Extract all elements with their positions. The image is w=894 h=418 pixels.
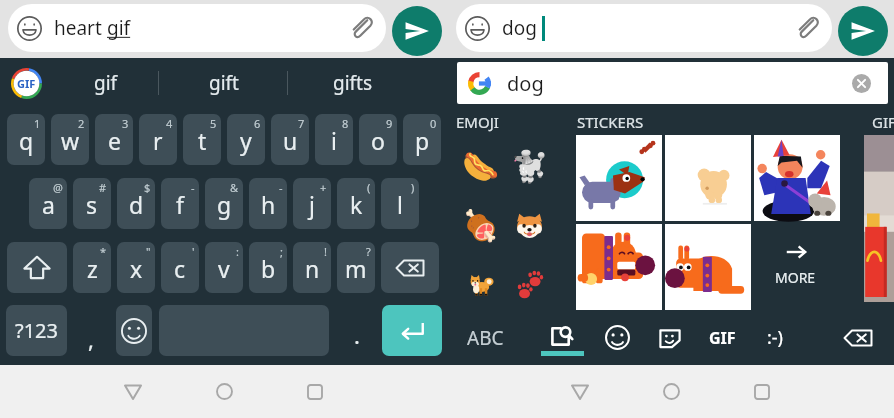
- button[interactable]: Home: [648, 365, 694, 418]
- staticText: MORE: [775, 268, 816, 287]
- button[interactable]: f: [161, 178, 199, 229]
- button[interactable]: GIF: [695, 310, 749, 365]
- button[interactable]: dog: [457, 62, 888, 104]
- button[interactable]: Emoji: [456, 255, 505, 314]
- button[interactable]: d: [117, 178, 155, 229]
- button[interactable]: GIF preview: [864, 135, 894, 302]
- button[interactable]: m: [337, 242, 375, 293]
- button[interactable]: p: [403, 114, 441, 165]
- button[interactable]: Home: [201, 365, 247, 418]
- button[interactable]: gifts: [288, 58, 417, 108]
- staticText: u: [283, 125, 298, 156]
- button[interactable]: w: [51, 114, 89, 165]
- button[interactable]: t: [183, 114, 221, 165]
- button[interactable]: gif: [53, 58, 159, 108]
- button[interactable]: Emoji: [505, 137, 554, 196]
- button[interactable]: n: [293, 242, 331, 293]
- staticText: 8: [342, 116, 349, 131]
- button[interactable]: Sticker: [576, 224, 662, 310]
- button[interactable]: Shift: [7, 242, 67, 293]
- button[interactable]: Backspace: [831, 310, 885, 365]
- staticText: e: [108, 125, 121, 156]
- staticText: ?123: [15, 317, 58, 344]
- button[interactable]: e: [95, 114, 133, 165]
- staticText: w: [61, 125, 80, 156]
- staticText: heart: [54, 15, 107, 41]
- button[interactable]: dog: [456, 4, 832, 52]
- staticText: k: [350, 189, 363, 220]
- button[interactable]: Send: [392, 6, 442, 56]
- staticText: t: [198, 125, 207, 156]
- button[interactable]: Enter: [382, 305, 442, 356]
- button[interactable]: Recents: [292, 365, 338, 418]
- button[interactable]: Emoji: [505, 255, 554, 314]
- button[interactable]: MORE: [751, 224, 840, 310]
- button[interactable]: Search stickers: [535, 310, 589, 365]
- button[interactable]: gift: [159, 58, 288, 108]
- button[interactable]: ,: [70, 305, 112, 356]
- button[interactable]: .: [337, 305, 376, 356]
- button[interactable]: l: [381, 178, 419, 229]
- button[interactable]: v: [205, 242, 243, 293]
- button[interactable]: u: [271, 114, 309, 165]
- button[interactable]: q: [7, 114, 45, 165]
- button[interactable]: ABC: [458, 310, 512, 365]
- button[interactable]: Sticker: [754, 135, 840, 221]
- staticText: i: [331, 125, 337, 156]
- button[interactable]: Emoji: [505, 196, 554, 255]
- button[interactable]: Emoticons: [748, 310, 802, 365]
- button[interactable]: s: [73, 178, 111, 229]
- button[interactable]: Sticker: [665, 135, 751, 221]
- staticText: o: [371, 125, 385, 156]
- button[interactable]: Clear: [846, 68, 876, 98]
- staticText: 0: [430, 116, 437, 131]
- staticText: GIF: [17, 76, 36, 91]
- button[interactable]: GIF search: [0, 58, 53, 108]
- button[interactable]: Recents: [739, 365, 785, 418]
- button[interactable]: j: [293, 178, 331, 229]
- button[interactable]: Attach: [344, 11, 378, 45]
- staticText: EMOJI: [456, 112, 499, 132]
- staticText: 7: [298, 116, 305, 131]
- button[interactable]: y: [227, 114, 265, 165]
- button[interactable]: b: [249, 242, 287, 293]
- button[interactable]: Sticker: [576, 135, 662, 221]
- staticText: :-): [767, 325, 784, 350]
- button[interactable]: Send: [838, 6, 888, 56]
- button[interactable]: h: [249, 178, 287, 229]
- button[interactable]: x: [117, 242, 155, 293]
- staticText: gif: [94, 70, 118, 96]
- staticText: GIFS: [872, 112, 894, 132]
- button[interactable]: Emoji: [456, 137, 505, 196]
- button[interactable]: Back: [110, 365, 156, 418]
- button[interactable]: Emoji: [456, 196, 505, 255]
- staticText: @: [53, 180, 63, 195]
- staticText: c: [174, 253, 186, 284]
- button[interactable]: r: [139, 114, 177, 165]
- button[interactable]: Emoji: [590, 310, 644, 365]
- button[interactable]: Emoji: [116, 305, 152, 356]
- button[interactable]: Sticker: [665, 224, 751, 310]
- staticText: ;: [280, 244, 283, 259]
- button[interactable]: Stickers: [643, 310, 697, 365]
- button[interactable]: i: [315, 114, 353, 165]
- button[interactable]: Backspace: [381, 242, 439, 293]
- button[interactable]: Attach: [790, 11, 824, 45]
- button[interactable]: ?123: [6, 305, 67, 356]
- staticText: !: [324, 244, 327, 259]
- staticText: h: [261, 189, 276, 220]
- button[interactable]: o: [359, 114, 397, 165]
- button[interactable]: heart: [8, 4, 386, 52]
- button[interactable]: a: [29, 178, 67, 229]
- staticText: .: [354, 320, 360, 350]
- staticText: 2: [78, 116, 85, 131]
- staticText: gifts: [333, 70, 373, 96]
- button[interactable]: Back: [557, 365, 603, 418]
- staticText: ABC: [467, 325, 504, 351]
- staticText: f: [176, 189, 184, 220]
- button[interactable]: g: [205, 178, 243, 229]
- button[interactable]: z: [73, 242, 111, 293]
- button[interactable]: k: [337, 178, 375, 229]
- button[interactable]: c: [161, 242, 199, 293]
